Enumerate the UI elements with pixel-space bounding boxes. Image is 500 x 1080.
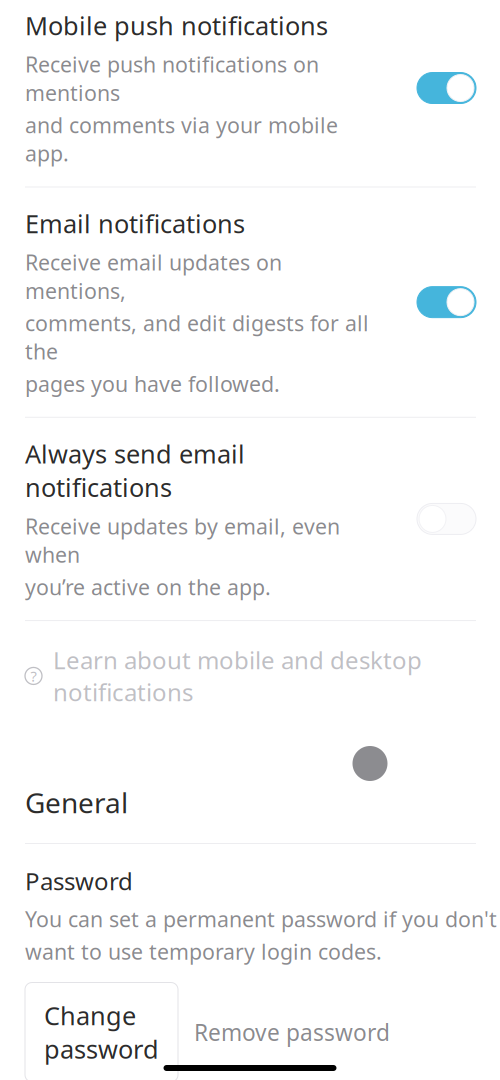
- staticText: want to use temporary login codes.: [25, 937, 382, 965]
- staticText: General: [25, 784, 128, 821]
- staticText: Always send email notifications: [25, 437, 245, 504]
- staticText: Receive updates by email, even when: [25, 512, 340, 569]
- staticText: Mobile push notifications: [25, 8, 328, 42]
- staticText: You can set a permanent password if you …: [25, 905, 497, 933]
- staticText: and comments via your mobile app.: [25, 111, 338, 167]
- button[interactable]: Email notifications: [25, 187, 476, 417]
- staticText: Change password: [44, 998, 159, 1066]
- staticText: Learn about mobile and desktop notificat…: [53, 644, 422, 708]
- staticText: Email notifications: [25, 206, 245, 240]
- button[interactable]: Change password: [25, 982, 178, 1080]
- staticText: you’re active on the app.: [25, 573, 271, 601]
- button[interactable]: Setting disabled: [417, 503, 476, 534]
- button[interactable]: Always send email notifications: [25, 418, 476, 620]
- staticText: Password: [25, 865, 133, 897]
- button[interactable]: Remove password: [194, 1009, 390, 1055]
- button[interactable]: Setting enabled: [417, 72, 476, 103]
- staticText: comments, and edit digests for all the: [25, 309, 369, 365]
- staticText: Receive push notifications on mentions: [25, 50, 319, 107]
- button[interactable]: Setting enabled: [417, 287, 476, 318]
- staticText: Receive email updates on mentions,: [25, 248, 282, 305]
- staticText: ?: [30, 666, 36, 686]
- button[interactable]: ?: [25, 630, 476, 722]
- button[interactable]: Mobile push notifications: [25, 0, 476, 186]
- staticText: pages you have followed.: [25, 369, 280, 398]
- staticText: Remove password: [194, 1017, 390, 1047]
